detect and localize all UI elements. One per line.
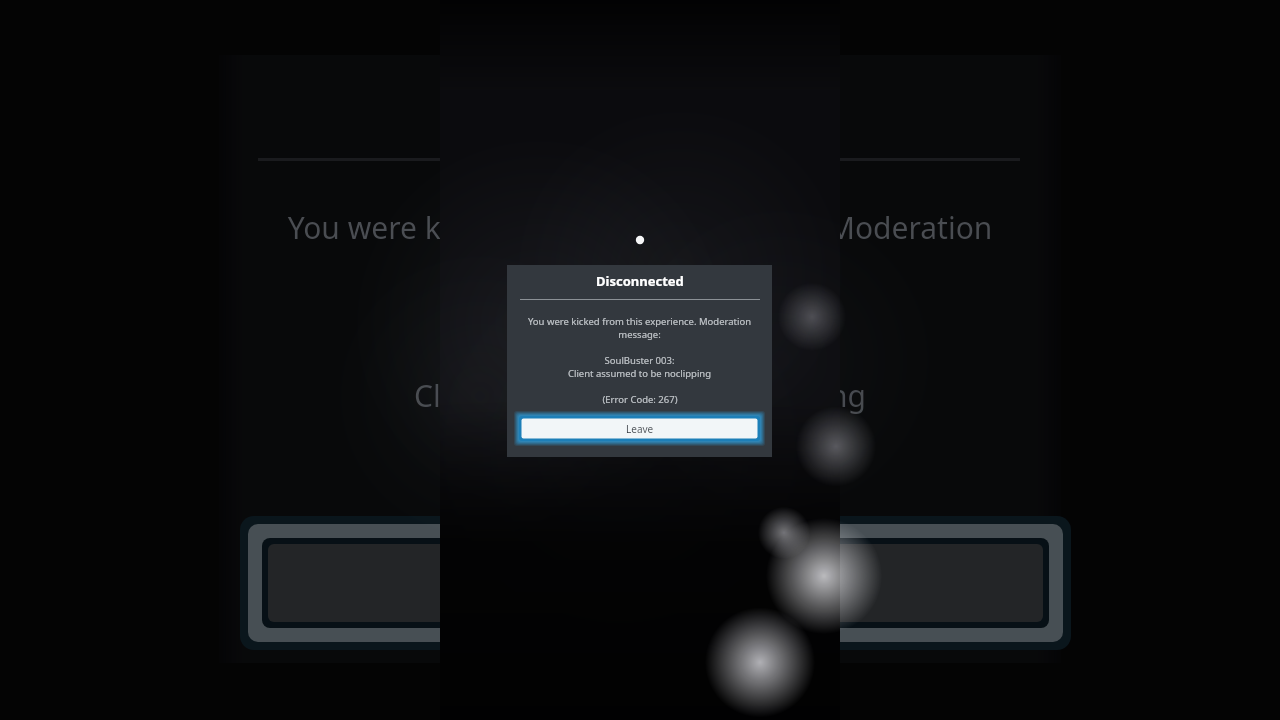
staticText: Client assumed to be noclipping	[219, 375, 1061, 416]
staticText: SoulBuster 003: Client assumed to be noc…	[517, 354, 762, 380]
staticText: You were kicked from this experience. Mo…	[522, 315, 757, 341]
button[interactable]: Leave	[519, 416, 760, 441]
staticText: You were kicked from this experience. Mo…	[219, 207, 1061, 248]
staticText: Disconnected	[596, 272, 684, 290]
staticText: (Error Code: 267)	[602, 393, 678, 406]
staticText: Leave	[626, 422, 654, 436]
